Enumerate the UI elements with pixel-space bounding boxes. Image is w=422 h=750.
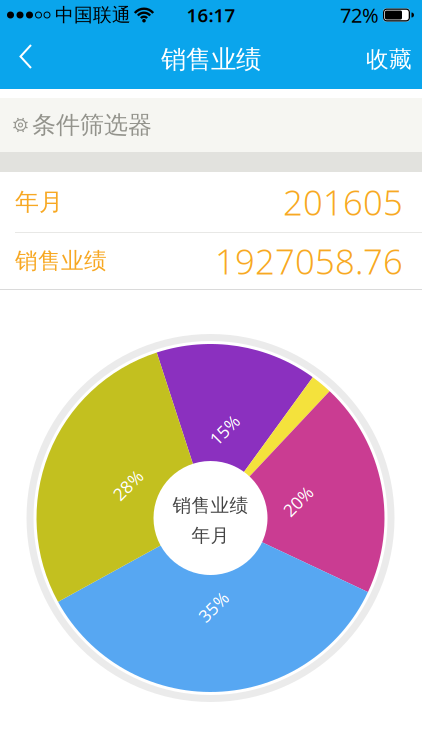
staticText: 销售业绩 bbox=[172, 494, 248, 517]
staticText: 35% bbox=[196, 595, 230, 618]
button[interactable]: Back bbox=[0, 31, 33, 87]
button[interactable]: 销售业绩 bbox=[0, 233, 422, 289]
staticText: 1927058.76 bbox=[215, 238, 403, 284]
staticText: 72% bbox=[340, 2, 379, 28]
staticText: 销售业绩 bbox=[15, 247, 107, 275]
staticText: 28% bbox=[111, 474, 145, 497]
button[interactable]: 年月 bbox=[0, 172, 422, 232]
staticText: 15% bbox=[207, 419, 241, 442]
staticText: 年月 bbox=[15, 187, 63, 217]
staticText: 条件筛选器 bbox=[32, 110, 152, 140]
staticText: 20% bbox=[281, 490, 315, 513]
staticText: 收藏 bbox=[366, 46, 412, 73]
button[interactable]: 收藏 bbox=[366, 32, 422, 87]
staticText: 年月 bbox=[191, 524, 229, 547]
staticText: 销售业绩 bbox=[161, 44, 261, 75]
button[interactable]: 条件筛选器 bbox=[0, 98, 422, 152]
staticText: 201605 bbox=[283, 179, 403, 225]
staticText: 16:17 bbox=[186, 3, 235, 27]
staticText: 中国联通 bbox=[55, 3, 131, 26]
